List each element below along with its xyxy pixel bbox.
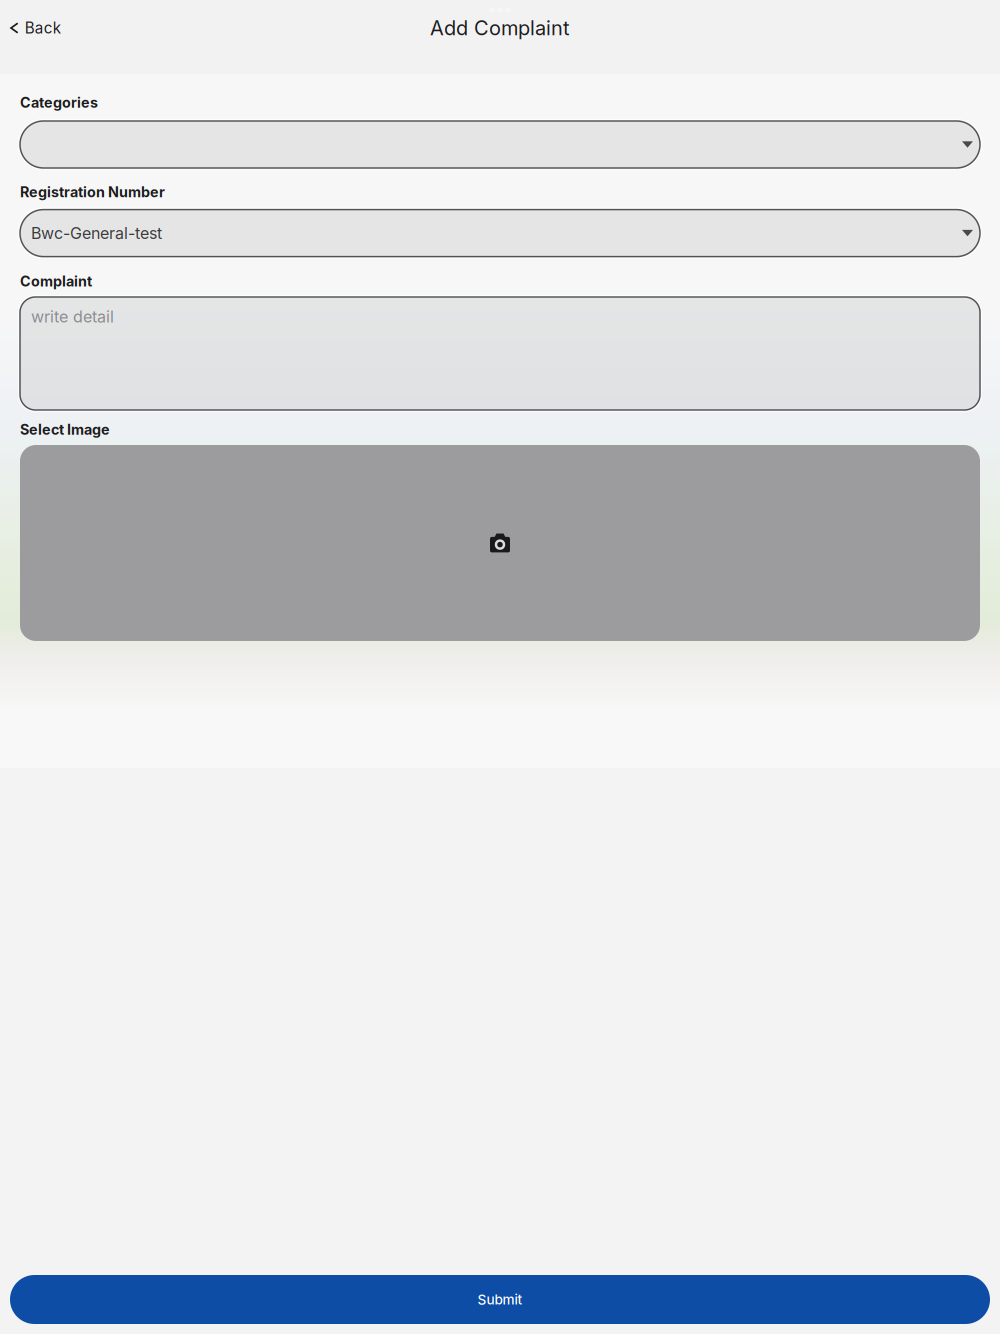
button[interactable]: Submit bbox=[0, 1275, 1000, 1324]
button[interactable]: write detail bbox=[20, 297, 980, 410]
staticText: Categories bbox=[20, 94, 98, 111]
staticText: write detail bbox=[31, 307, 114, 326]
staticText: Submit bbox=[477, 1291, 522, 1308]
staticText: Back bbox=[25, 19, 61, 37]
staticText: Registration Number bbox=[20, 183, 165, 201]
button[interactable]: Select Image bbox=[20, 445, 980, 641]
staticText: Complaint bbox=[20, 273, 92, 290]
button[interactable]: Registration Number picker bbox=[20, 210, 980, 257]
staticText: Select Image bbox=[20, 421, 110, 438]
button[interactable]: Back bbox=[0, 9, 73, 47]
button[interactable]: Categories picker bbox=[20, 121, 980, 168]
staticText: Bwc-General-test bbox=[31, 223, 162, 243]
staticText: Add Complaint bbox=[430, 16, 570, 40]
